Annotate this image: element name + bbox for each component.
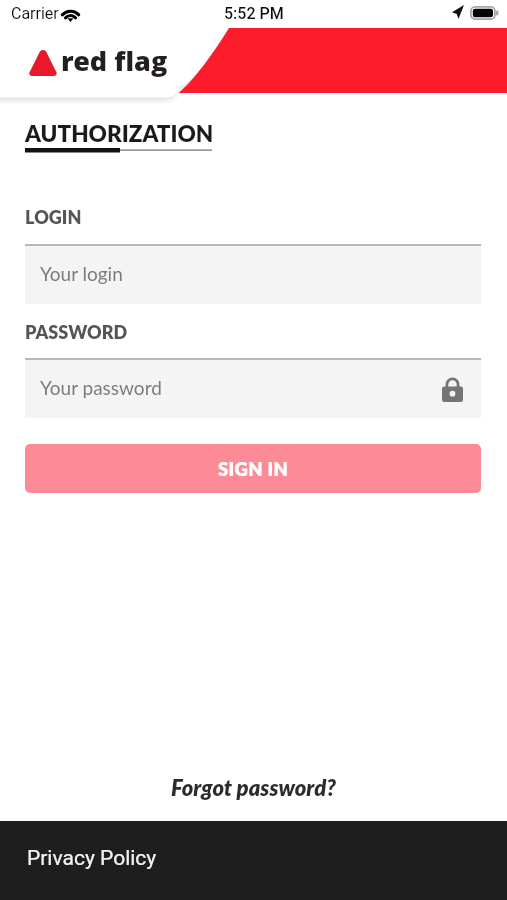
button[interactable]: Forgot password? <box>163 770 344 804</box>
staticText: LOGIN <box>25 206 82 228</box>
button[interactable]: Privacy Policy <box>0 821 507 900</box>
staticText: SIGN IN <box>218 458 289 480</box>
staticText: Privacy Policy <box>27 846 157 871</box>
button[interactable]: SIGN IN <box>25 444 481 493</box>
staticText: Forgot password? <box>171 774 336 800</box>
other: Show password <box>442 376 463 402</box>
staticText: Your login <box>40 262 123 285</box>
staticText: AUTHORIZATION <box>25 120 214 147</box>
staticText: Your password <box>40 376 162 399</box>
button[interactable]: Your password <box>25 360 481 418</box>
staticText: Carrier <box>11 4 59 23</box>
button[interactable]: Your login <box>25 246 481 304</box>
staticText: 5:52 PM <box>224 4 284 23</box>
staticText: PASSWORD <box>25 321 128 343</box>
staticText: red flag <box>61 42 168 79</box>
